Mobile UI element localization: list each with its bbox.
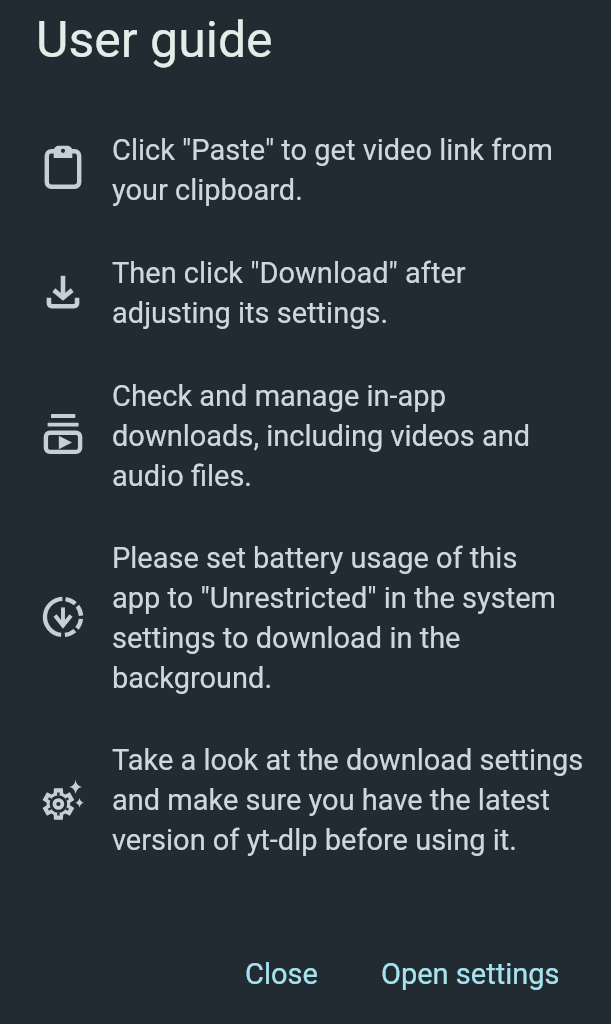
staticText: Take a look at the download settings and… (112, 743, 584, 857)
staticText: Open settings (381, 957, 560, 991)
other: Download (39, 268, 87, 316)
other: Downloading (39, 593, 87, 641)
staticText: Close (245, 957, 318, 991)
staticText: User guide (36, 11, 273, 70)
button[interactable]: Close (231, 943, 332, 1005)
other: Video library (39, 410, 87, 458)
button[interactable]: Open settings (367, 943, 574, 1005)
staticText: Click "Paste" to get video link from you… (112, 133, 553, 207)
other: Download settings (39, 776, 87, 824)
staticText: Check and manage in-app downloads, inclu… (112, 379, 531, 493)
staticText: Please set battery usage of this app to … (112, 541, 556, 695)
other: Paste from clipboard (39, 145, 87, 193)
staticText: Then click "Download" after adjusting it… (112, 256, 466, 330)
